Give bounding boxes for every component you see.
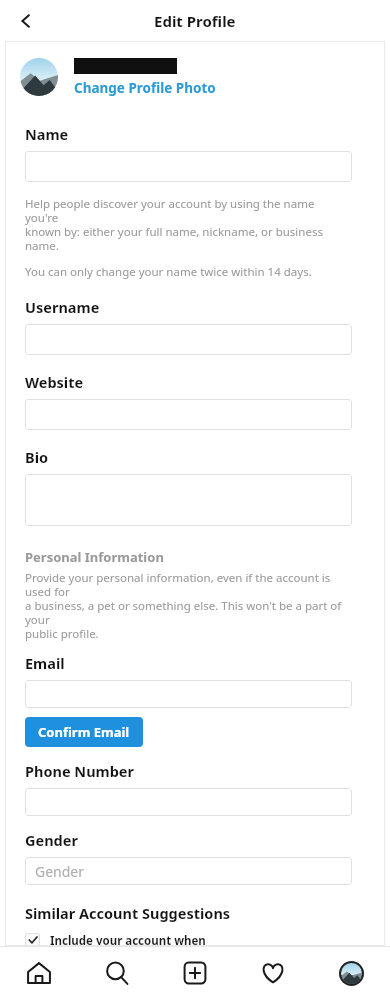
staticText: Phone Number xyxy=(25,761,134,781)
staticText: Gender xyxy=(25,830,78,850)
staticText: Provide your personal information, even … xyxy=(25,570,355,641)
button[interactable]: Create xyxy=(156,946,234,1000)
staticText: Username xyxy=(25,297,100,317)
button[interactable]: Change Profile Photo xyxy=(74,79,216,97)
staticText: Personal Information xyxy=(25,548,164,566)
staticText: Gender xyxy=(35,862,85,881)
button[interactable]: Back xyxy=(8,3,44,39)
button[interactable]: Home xyxy=(0,946,78,1000)
staticText: You can only change your name twice with… xyxy=(25,264,312,280)
button[interactable] xyxy=(25,788,352,816)
button[interactable]: Confirm Email xyxy=(25,717,143,747)
staticText: Confirm Email xyxy=(38,723,130,741)
staticText: Include your account when recommending s… xyxy=(50,933,235,946)
staticText: Website xyxy=(25,372,84,392)
button[interactable]: Search xyxy=(78,946,156,1000)
staticText: Similar Account Suggestions xyxy=(25,903,231,923)
staticText: Name xyxy=(25,124,69,144)
button[interactable]: Gender xyxy=(25,857,352,885)
staticText: Help people discover your account by usi… xyxy=(25,196,345,253)
staticText: Email xyxy=(25,653,65,673)
staticText: Edit Profile xyxy=(154,11,236,31)
button[interactable]: Activity xyxy=(234,946,312,1000)
button[interactable]: Profile xyxy=(312,946,390,1000)
button[interactable]: Include account checkbox xyxy=(25,933,40,946)
button[interactable] xyxy=(25,399,352,430)
button[interactable] xyxy=(25,151,352,182)
staticText: Change Profile Photo xyxy=(74,79,216,97)
button[interactable] xyxy=(25,324,352,355)
button[interactable] xyxy=(25,680,352,708)
staticText: Bio xyxy=(25,447,49,467)
button[interactable] xyxy=(25,474,352,526)
